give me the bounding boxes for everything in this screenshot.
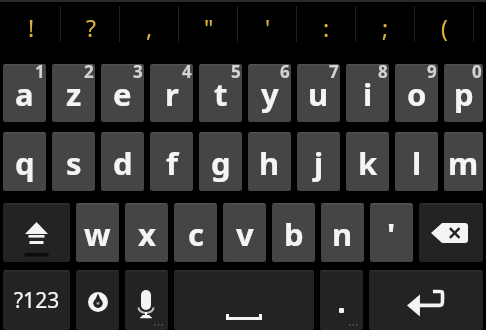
staticText: ?123 [14, 286, 60, 315]
staticText: o [407, 73, 427, 115]
button[interactable]: ; [356, 0, 415, 56]
button[interactable]: g [199, 132, 242, 191]
button[interactable]: Emoji [76, 270, 119, 330]
staticText: n [332, 213, 353, 255]
staticText: 7 [329, 64, 339, 83]
button[interactable]: e [101, 64, 144, 122]
staticText: a [15, 73, 34, 115]
staticText: e [113, 73, 132, 115]
staticText: h [259, 142, 280, 184]
staticText: 4 [182, 64, 192, 83]
button[interactable]: i [346, 64, 389, 122]
button[interactable]: p [444, 64, 483, 122]
button[interactable]: w [76, 203, 119, 262]
button[interactable]: s [52, 132, 95, 191]
button[interactable]: ( [415, 0, 474, 56]
button[interactable]: Shift [3, 203, 70, 262]
button[interactable]: v [223, 203, 266, 262]
button[interactable]: d [101, 132, 144, 191]
button[interactable]: ?123 [3, 270, 70, 330]
staticText: f [166, 142, 178, 184]
button[interactable]: ' [238, 0, 297, 56]
button[interactable]: a [3, 64, 46, 122]
staticText: q [15, 142, 35, 184]
button[interactable] [320, 270, 363, 330]
button[interactable]: m [444, 132, 483, 191]
button[interactable]: z [52, 64, 95, 122]
button[interactable]: Backspace [419, 203, 483, 262]
button[interactable]: j [297, 132, 340, 191]
button[interactable]: , [120, 0, 179, 56]
staticText: l [412, 142, 422, 184]
staticText: u [308, 73, 329, 115]
staticText: 8 [378, 64, 388, 83]
staticText: 3 [133, 64, 143, 83]
staticText: b [284, 213, 304, 255]
staticText: r [165, 73, 179, 115]
staticText: ! [28, 12, 35, 43]
staticText: y [261, 73, 279, 115]
staticText: j [314, 142, 324, 184]
button[interactable]: o [395, 64, 438, 122]
button[interactable]: k [346, 132, 389, 191]
staticText: 0 [472, 64, 482, 83]
staticText: " [204, 12, 214, 43]
staticText: m [448, 142, 479, 184]
staticText: t [214, 73, 228, 115]
staticText: ' [265, 12, 271, 43]
staticText: ? [86, 12, 96, 43]
button[interactable]: Space [174, 270, 314, 330]
button[interactable]: f [150, 132, 193, 191]
button[interactable]: Voice input [125, 270, 168, 330]
button[interactable]: n [321, 203, 364, 262]
staticText: d [113, 142, 133, 184]
button[interactable]: : [297, 0, 356, 56]
button[interactable]: b [272, 203, 315, 262]
button[interactable]: u [297, 64, 340, 122]
staticText: 6 [280, 64, 290, 83]
staticText: x [138, 213, 156, 255]
staticText: ( [441, 12, 448, 43]
staticText: ; [382, 12, 389, 43]
staticText: k [358, 142, 378, 184]
staticText: i [363, 73, 373, 115]
staticText: 1 [35, 64, 45, 83]
staticText: 2 [84, 64, 94, 83]
button[interactable]: ' [370, 203, 413, 262]
button[interactable]: h [248, 132, 291, 191]
button[interactable]: ! [2, 0, 61, 56]
staticText: : [323, 12, 330, 43]
button[interactable]: x [125, 203, 168, 262]
button[interactable]: c [174, 203, 217, 262]
staticText: 5 [231, 64, 241, 83]
staticText: z [66, 73, 82, 115]
button[interactable]: r [150, 64, 193, 122]
staticText: c [188, 213, 204, 255]
staticText: w [84, 213, 111, 255]
staticText: g [211, 142, 231, 184]
button[interactable]: q [3, 132, 46, 191]
button[interactable]: Enter [369, 270, 483, 330]
button[interactable]: l [395, 132, 438, 191]
button[interactable]: y [248, 64, 291, 122]
staticText: ' [387, 213, 396, 255]
staticText: p [454, 73, 474, 115]
button[interactable]: " [179, 0, 238, 56]
staticText: 9 [427, 64, 437, 83]
button[interactable]: t [199, 64, 242, 122]
staticText: , [146, 12, 153, 43]
button[interactable]: ? [61, 0, 120, 56]
staticText: v [236, 213, 254, 255]
staticText: s [66, 142, 82, 184]
